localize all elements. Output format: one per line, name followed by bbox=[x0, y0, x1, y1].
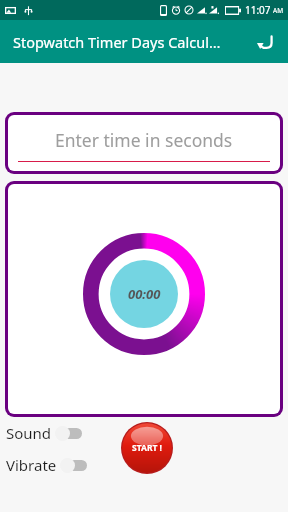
button[interactable]: 00:00 bbox=[110, 260, 178, 328]
staticText: 00:00 bbox=[128, 285, 161, 303]
button[interactable]: Sound bbox=[0, 421, 89, 445]
button[interactable]: Vibrate bbox=[0, 453, 94, 477]
button[interactable]: Enter time in seconds bbox=[8, 115, 280, 171]
button[interactable]: START ! bbox=[121, 422, 173, 474]
staticText: Sound bbox=[6, 423, 52, 443]
button[interactable]: Back bbox=[250, 27, 280, 57]
staticText: 11:07 bbox=[245, 3, 271, 17]
staticText: Enter time in seconds bbox=[55, 128, 233, 152]
staticText: Vibrate bbox=[6, 455, 57, 475]
staticText: START ! bbox=[132, 442, 162, 454]
staticText: AM bbox=[273, 6, 284, 15]
staticText: Stopwatch Timer Days Calcul… bbox=[13, 32, 221, 52]
